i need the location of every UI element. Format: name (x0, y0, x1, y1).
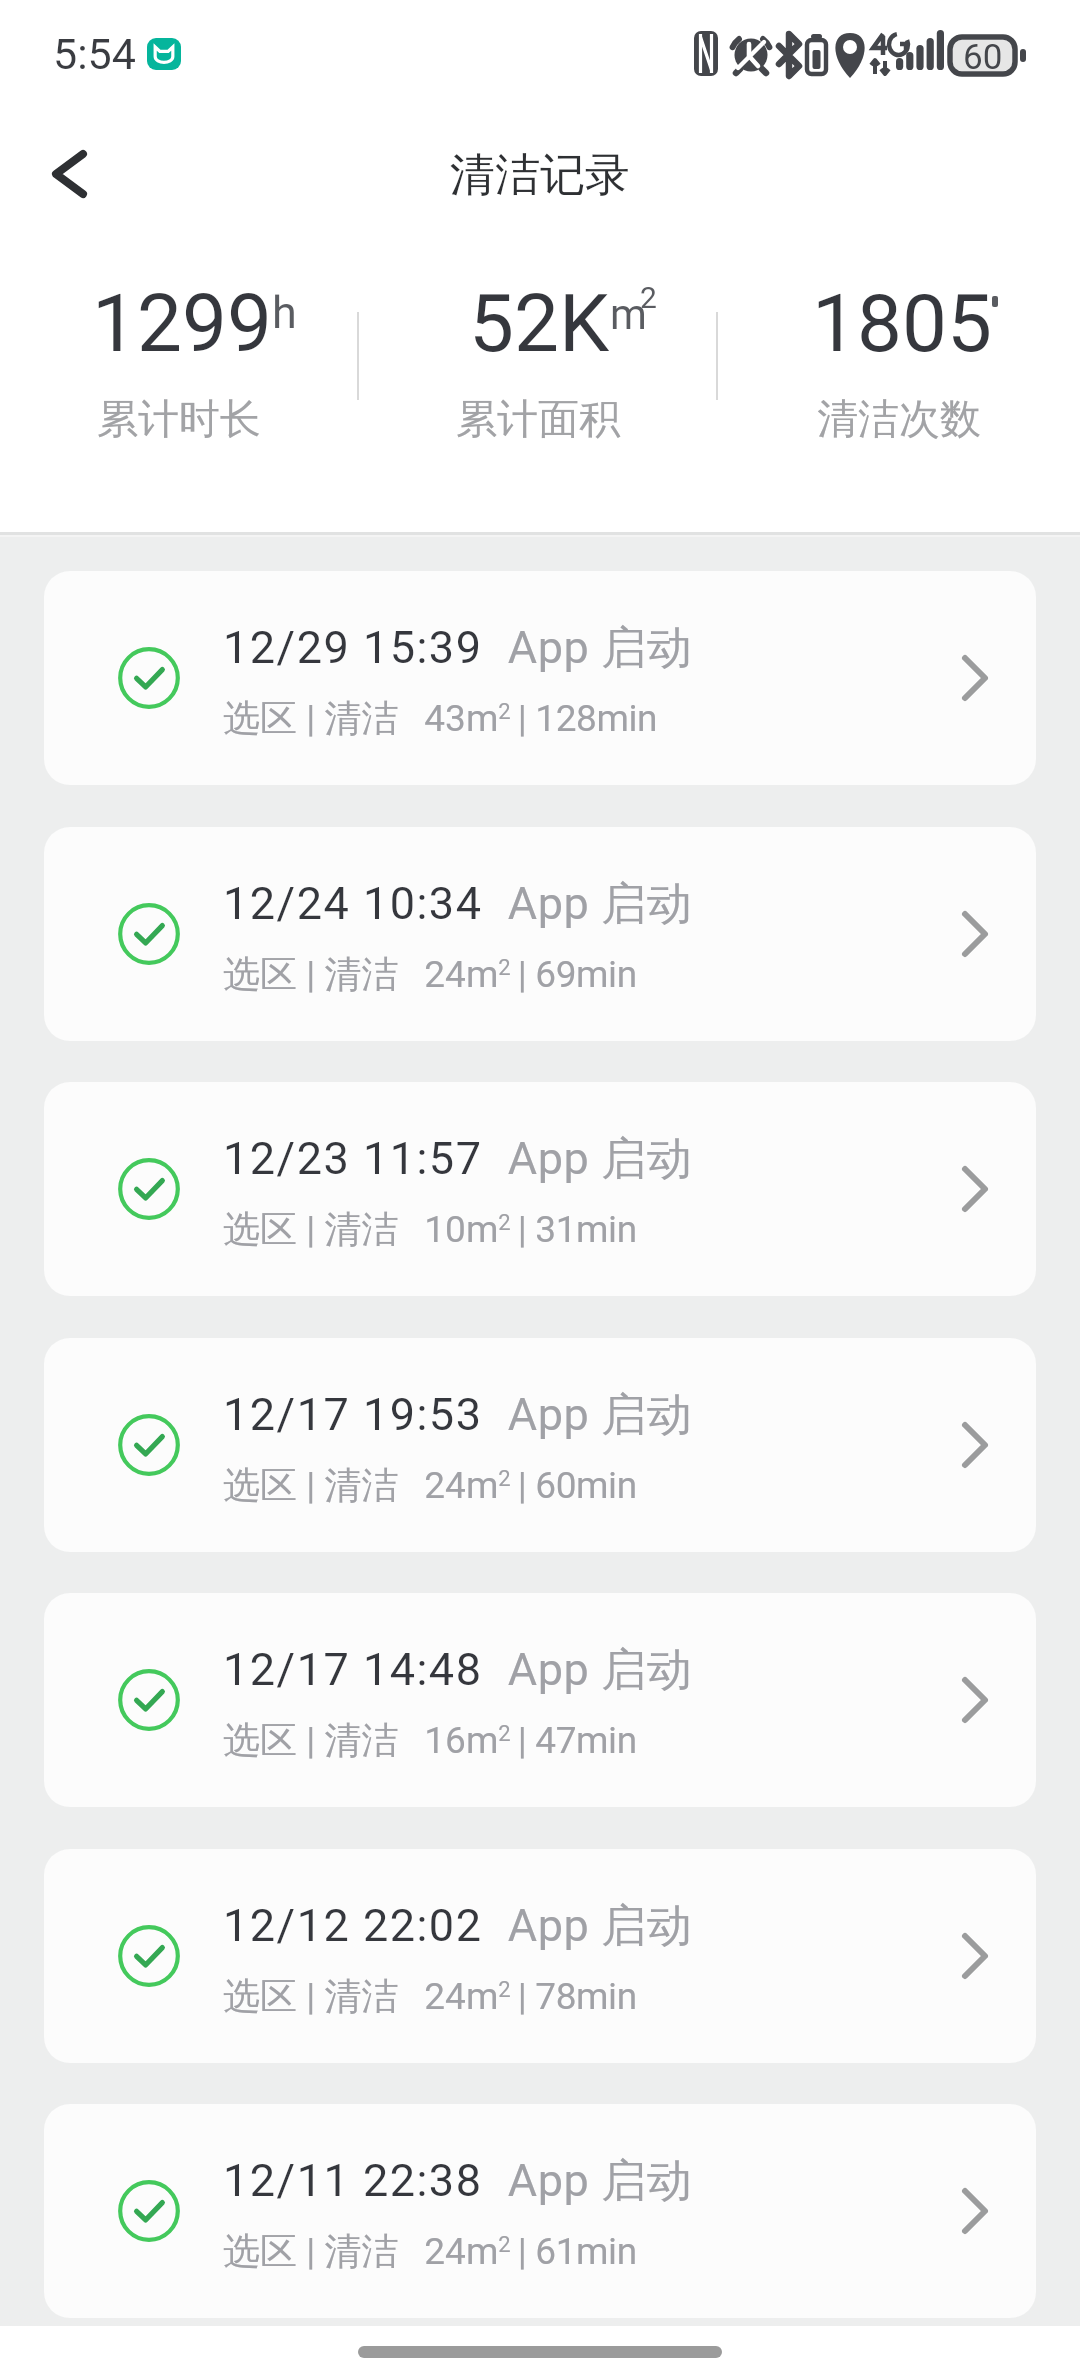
staticText: 累计时长 (97, 394, 261, 446)
button[interactable]: 返回 (23, 131, 115, 223)
staticText: 选区 | 清洁 43m2 | 128min (223, 695, 658, 742)
button[interactable]: 12/17 19:53 App 启动 (44, 1338, 1036, 1552)
staticText: 12/23 11:57 App 启动 (223, 1131, 693, 1188)
staticText: 选区 | 清洁 24m2 | 60min (223, 1462, 637, 1509)
staticText: 清洁记录 (450, 147, 630, 204)
button[interactable]: 12/29 15:39 App 启动 (44, 571, 1036, 785)
staticText: 52K (469, 277, 610, 371)
button[interactable]: 12/12 22:02 App 启动 (44, 1849, 1036, 2063)
staticText: 12/17 19:53 App 启动 (223, 1387, 693, 1444)
button[interactable]: 12/23 11:57 App 启动 (44, 1082, 1036, 1296)
staticText: 1805 (812, 277, 992, 371)
staticText: 1299 (92, 277, 272, 371)
staticText: 选区 | 清洁 24m2 | 69min (223, 951, 637, 998)
staticText: 12/11 22:38 App 启动 (223, 2153, 693, 2210)
staticText: 选区 | 清洁 24m2 | 61min (223, 2228, 637, 2275)
staticText: 累计面积 (456, 394, 620, 446)
staticText: 选区 | 清洁 10m2 | 31min (223, 1206, 637, 1253)
button[interactable]: 12/11 22:38 App 启动 (44, 2104, 1036, 2318)
staticText: 5:54 (53, 29, 136, 79)
staticText: 12/24 10:34 App 启动 (223, 876, 693, 933)
button[interactable]: 12/17 14:48 App 启动 (44, 1593, 1036, 1807)
button[interactable]: 12/24 10:34 App 启动 (44, 827, 1036, 1041)
staticText: 12/12 22:02 App 启动 (223, 1898, 693, 1955)
staticText: 12/17 14:48 App 启动 (223, 1642, 693, 1699)
staticText: 60 (963, 37, 1003, 74)
staticText: 选区 | 清洁 24m2 | 78min (223, 1973, 637, 2020)
staticText: 选区 | 清洁 16m2 | 47min (223, 1717, 637, 1764)
staticText: 12/29 15:39 App 启动 (223, 620, 693, 677)
staticText: 2 (640, 280, 657, 315)
staticText: h (272, 286, 297, 339)
staticText: 清洁次数 (817, 394, 981, 446)
staticText: m (610, 290, 647, 339)
